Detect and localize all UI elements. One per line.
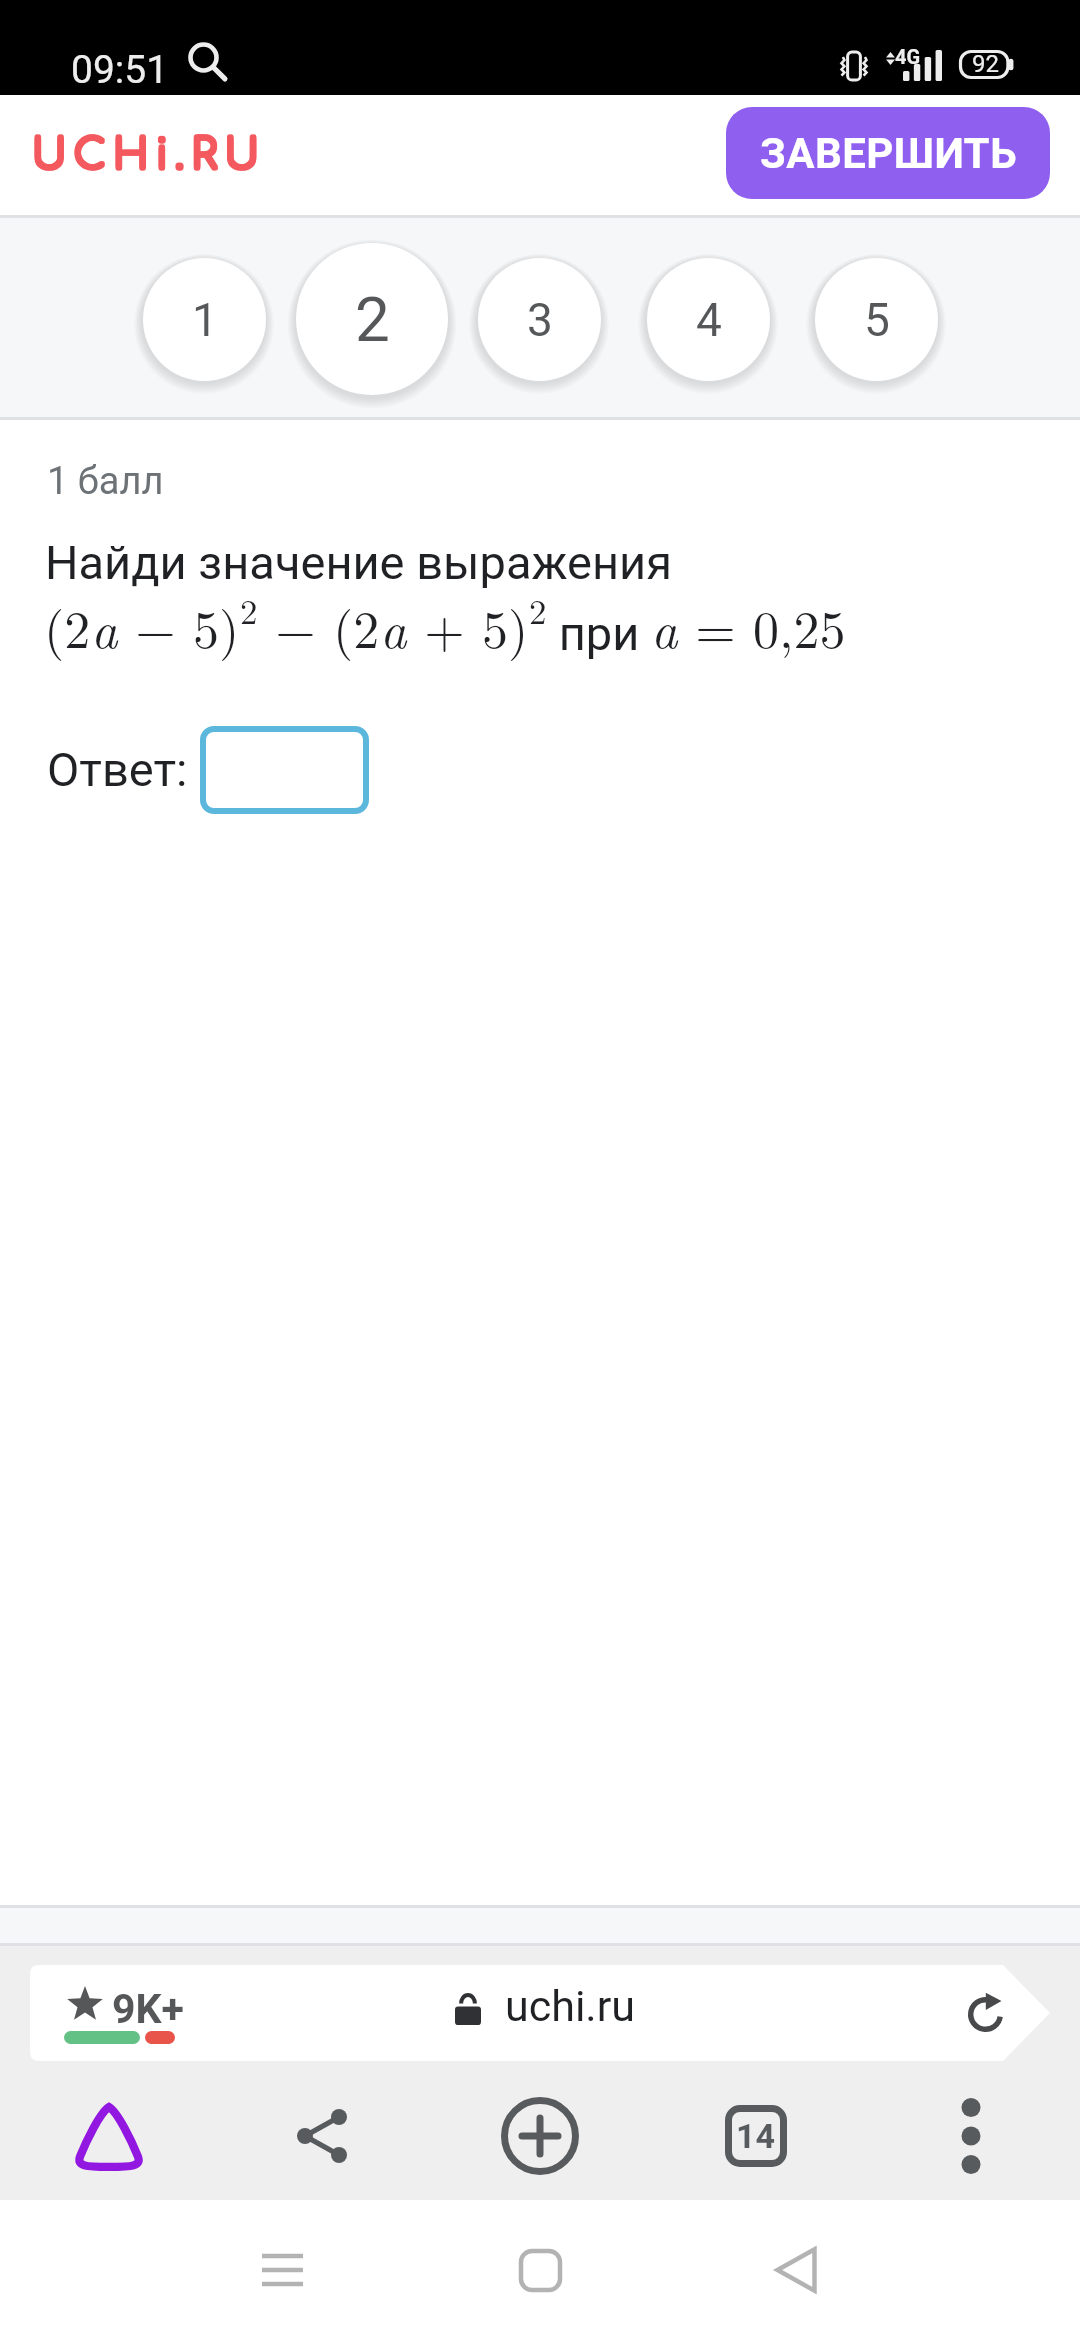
- button[interactable]: Answer input: [200, 726, 369, 814]
- staticText: 09:51: [71, 47, 169, 93]
- button[interactable]: Recent apps: [190, 2200, 375, 2340]
- staticText: a: [651, 589, 678, 663]
- staticText: 92: [972, 50, 999, 78]
- button[interactable]: 1: [143, 258, 266, 381]
- button[interactable]: Search: [176, 30, 240, 94]
- staticText: 3: [527, 293, 553, 347]
- button[interactable]: More options: [906, 2086, 1036, 2186]
- staticText: a: [91, 589, 118, 663]
- staticText: 2: [355, 283, 390, 356]
- staticText: UCHi.RU: [33, 131, 268, 178]
- button[interactable]: 3: [478, 258, 601, 381]
- staticText: 4: [696, 293, 722, 347]
- button[interactable]: Home: [448, 2200, 633, 2340]
- button[interactable]: 2: [296, 243, 448, 395]
- staticText: uchi.ru: [505, 1981, 635, 2031]
- staticText: ЗАВЕРШИТЬ: [760, 129, 1017, 178]
- staticText: Ответ:: [47, 742, 188, 797]
- button[interactable]: Share: [257, 2086, 387, 2186]
- staticText: + 5): [407, 589, 529, 663]
- staticText: 14: [736, 2116, 776, 2156]
- button[interactable]: Reload: [940, 1973, 1020, 2053]
- button[interactable]: ЗАВЕРШИТЬ: [726, 107, 1050, 199]
- staticText: 1 балл: [47, 459, 164, 504]
- staticText: 5: [864, 293, 890, 347]
- staticText: 2: [529, 585, 547, 635]
- staticText: − (2: [258, 589, 380, 663]
- button[interactable]: 5: [815, 258, 938, 381]
- staticText: 9K+: [112, 1985, 184, 2033]
- button[interactable]: Back: [703, 2200, 888, 2340]
- staticText: 1: [192, 293, 218, 347]
- staticText: 4G: [895, 45, 921, 68]
- staticText: − 5): [118, 589, 240, 663]
- button[interactable]: Opera menu: [44, 2086, 174, 2186]
- staticText: UCHi.RU: [31, 133, 266, 180]
- staticText: = 0,25: [678, 589, 846, 663]
- button[interactable]: Tabs, 14 open: [691, 2086, 821, 2186]
- staticText: 2: [240, 585, 258, 635]
- staticText: a: [380, 589, 407, 663]
- button[interactable]: New tab: [475, 2086, 605, 2186]
- staticText: UCHi.RU: [31, 131, 266, 178]
- staticText: при: [547, 606, 651, 661]
- staticText: Найди значение выражения: [45, 535, 673, 590]
- button[interactable]: 9K+: [30, 1965, 1050, 2061]
- staticText: UCHi.RU: [33, 133, 268, 180]
- staticText: (2: [44, 589, 91, 663]
- button[interactable]: 4: [647, 258, 770, 381]
